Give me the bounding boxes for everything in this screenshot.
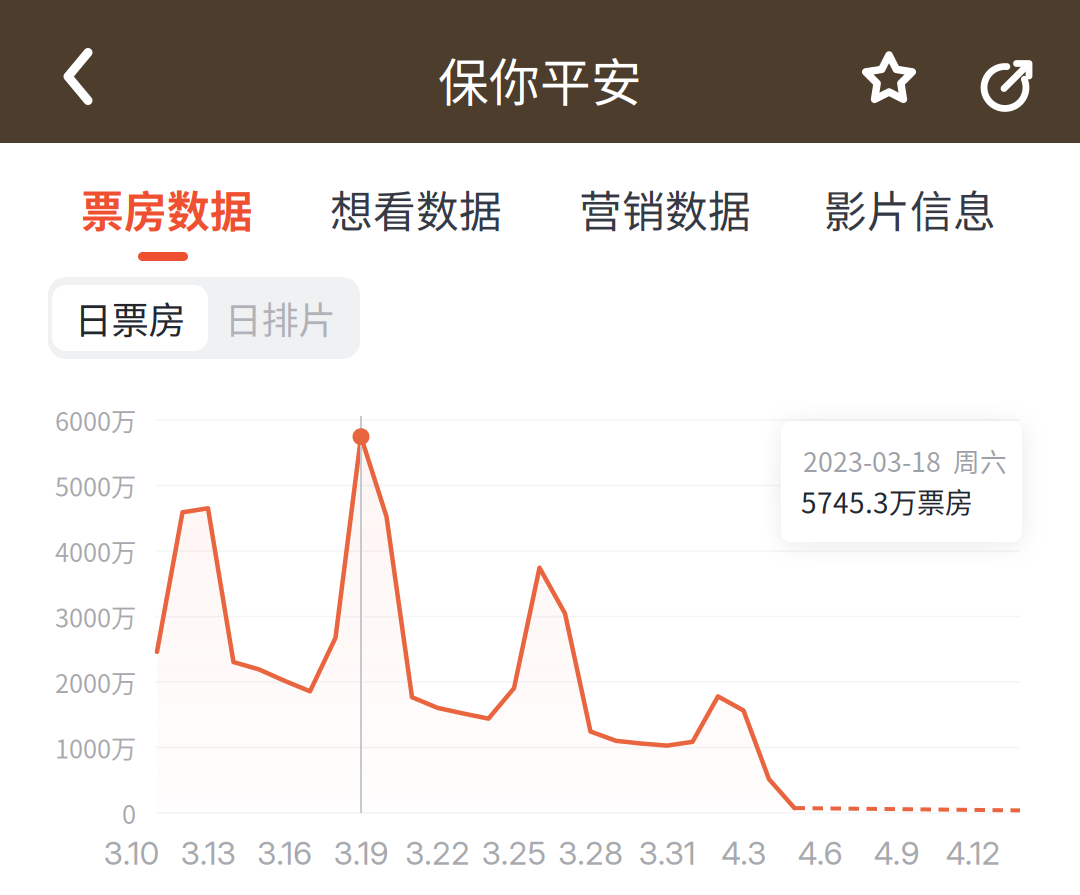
staticText: 日票房	[74, 291, 185, 345]
staticText: 2023-03-18 周六	[803, 441, 1007, 480]
staticText: 3.19	[333, 834, 388, 872]
staticText: 影片信息	[824, 178, 996, 240]
button[interactable]: Back	[26, 5, 130, 148]
staticText: 3.25	[481, 834, 546, 872]
staticText: 票房数据	[81, 178, 253, 240]
staticText: 4.3	[721, 834, 766, 872]
staticText: 3.31	[638, 834, 695, 872]
staticText: 3.16	[257, 834, 312, 872]
button[interactable]: Favorite	[841, 7, 937, 150]
button[interactable]: 日排片	[204, 285, 356, 351]
staticText: 营销数据	[579, 178, 751, 240]
staticText: 4.12	[945, 834, 1000, 872]
button[interactable]: 营销数据	[579, 178, 747, 278]
staticText: 3.22	[405, 834, 470, 872]
staticText: 3.28	[558, 834, 623, 872]
button[interactable]: Share	[962, 11, 1058, 154]
staticText: 想看数据	[330, 178, 502, 240]
button[interactable]: 想看数据	[330, 178, 498, 278]
staticText: 日排片	[224, 291, 335, 345]
button[interactable]: 影片信息	[824, 178, 992, 278]
staticText: 2000万	[55, 664, 136, 700]
staticText: 3000万	[55, 598, 136, 635]
staticText: 1000万	[55, 729, 136, 766]
staticText: 5745.3万票房	[801, 481, 973, 521]
staticText: 4000万	[55, 533, 136, 569]
staticText: 5000万	[55, 467, 136, 504]
button[interactable]: 日票房	[52, 285, 208, 351]
staticText: 保你平安	[438, 43, 642, 116]
staticText: 4.9	[873, 834, 919, 872]
button[interactable]: 票房数据	[81, 178, 249, 278]
staticText: 3.10	[103, 834, 159, 872]
staticText: 4.6	[797, 834, 842, 872]
staticText: 6000万	[55, 402, 136, 438]
staticText: 3.13	[180, 834, 235, 872]
staticText: 0	[122, 795, 136, 831]
